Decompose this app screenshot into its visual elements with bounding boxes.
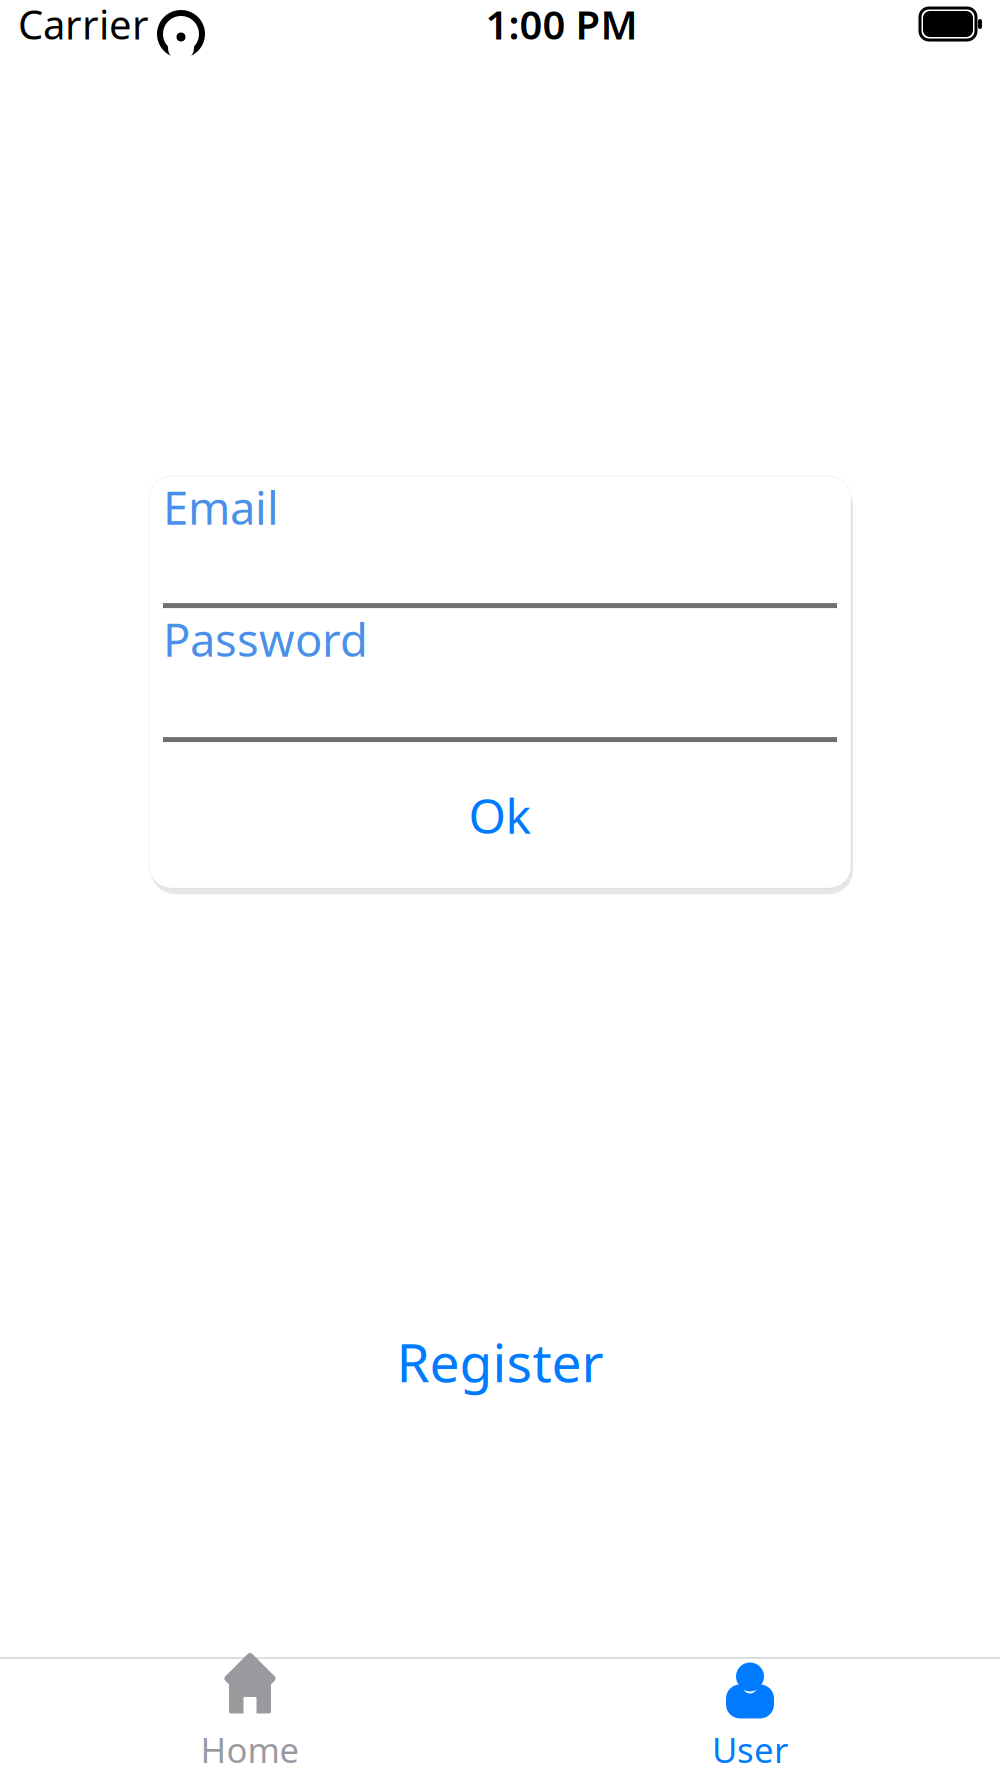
staticText: 1:00 PM — [485, 0, 637, 50]
staticText: Password — [163, 608, 368, 670]
staticText: Ok — [468, 783, 531, 847]
button[interactable]: Home — [0, 1659, 500, 1778]
button[interactable]: Register — [372, 1316, 627, 1407]
button[interactable]: Ok — [163, 742, 837, 888]
staticText: Email — [163, 476, 279, 538]
staticText: Register — [396, 1326, 603, 1397]
staticText: User — [712, 1726, 788, 1772]
button[interactable]: User — [500, 1659, 1000, 1778]
staticText: Home — [200, 1726, 299, 1772]
staticText: Carrier — [18, 0, 149, 50]
